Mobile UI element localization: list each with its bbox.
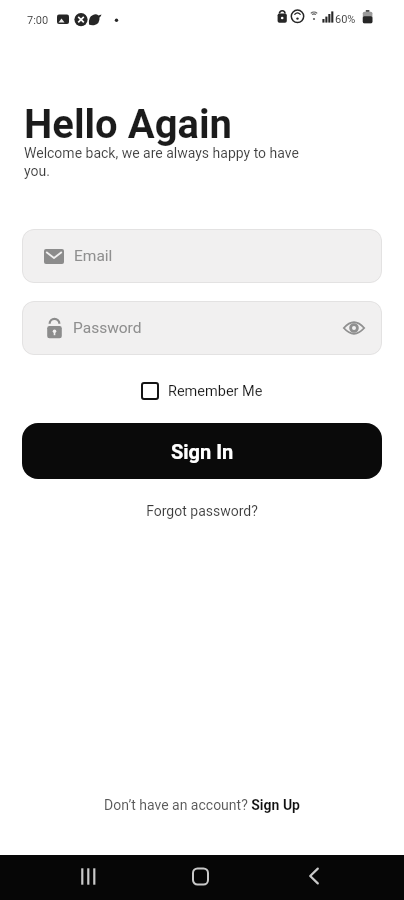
button[interactable]: Email: [22, 229, 382, 283]
staticText: Remember Me: [168, 383, 263, 400]
button[interactable]: [342, 316, 366, 340]
button[interactable]: Don’t have an account? Sign Up: [0, 797, 404, 813]
staticText: Sign In: [171, 440, 234, 463]
button[interactable]: [68, 856, 108, 896]
staticText: 60%: [335, 13, 356, 26]
staticText: Email: [74, 247, 113, 265]
button[interactable]: Password: [22, 301, 382, 355]
staticText: 7:00: [27, 14, 49, 27]
button[interactable]: Remember Me: [0, 380, 404, 402]
staticText: Hello Again: [24, 101, 232, 148]
button[interactable]: [294, 856, 334, 896]
button[interactable]: Sign In: [22, 423, 382, 479]
button[interactable]: Forgot password?: [0, 503, 404, 519]
staticText: Password: [73, 319, 142, 337]
button[interactable]: [180, 856, 220, 896]
staticText: Welcome back, we are always happy to hav…: [24, 145, 299, 180]
